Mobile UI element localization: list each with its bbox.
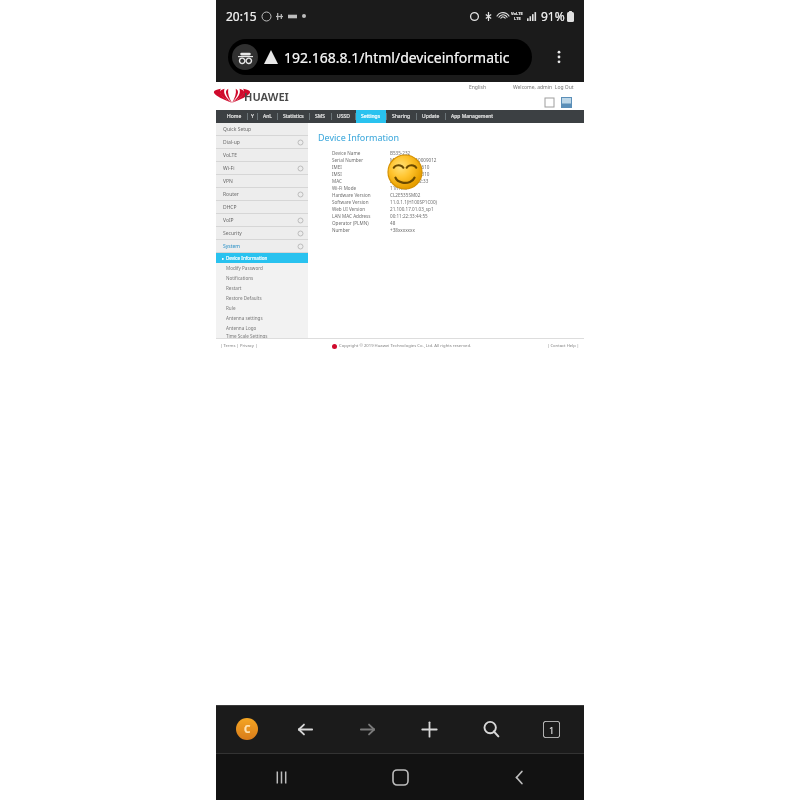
- button[interactable]: | Contact Help |: [547, 343, 580, 349]
- staticText: Antenna Logo: [226, 325, 257, 331]
- staticText: English: [469, 84, 487, 91]
- staticText: 1: [549, 724, 555, 736]
- button[interactable]: SMS: [545, 98, 554, 107]
- button[interactable]: Dial-up: [216, 136, 308, 148]
- staticText: +38xxxxxxx: [390, 227, 415, 233]
- staticText: 48: [390, 220, 396, 226]
- button[interactable]: VoLTE: [216, 149, 308, 161]
- button[interactable]: Tabs: [538, 716, 564, 742]
- staticText: IMEI: [332, 164, 342, 170]
- staticText: CL2E535SM02: [390, 192, 421, 198]
- button[interactable]: Antenna settings: [216, 313, 308, 323]
- button[interactable]: Notifications: [216, 273, 308, 283]
- staticText: LAN MAC Address: [332, 213, 371, 219]
- staticText: 91%: [541, 8, 565, 24]
- staticText: Software Version: [332, 199, 369, 205]
- button[interactable]: Home: [222, 110, 247, 123]
- staticText: 862152042155610: [390, 164, 430, 170]
- staticText: Dial-up: [223, 139, 240, 146]
- button[interactable]: Rule: [216, 303, 308, 313]
- staticText: | Contact Help |: [547, 343, 580, 349]
- button[interactable]: Restore Defaults: [216, 293, 308, 303]
- staticText: USSD: [337, 113, 350, 120]
- staticText: SMS: [315, 113, 326, 120]
- staticText: VoLTE: [223, 152, 238, 159]
- staticText: VoIP: [223, 217, 234, 224]
- button[interactable]: Statistics: [278, 110, 309, 123]
- button[interactable]: Quick Setup: [216, 123, 308, 135]
- button[interactable]: Wi-Fi: [216, 162, 308, 174]
- staticText: 11n mix: [390, 185, 408, 191]
- staticText: C: [244, 722, 251, 736]
- button[interactable]: Search: [476, 714, 506, 744]
- staticText: Rule: [226, 305, 236, 311]
- button[interactable]: Time Scale Settings: [216, 333, 308, 338]
- staticText: DHCP: [223, 204, 237, 211]
- button[interactable]: | Terms | Privacy |: [220, 343, 258, 349]
- staticText: Router: [223, 191, 239, 198]
- button[interactable]: English: [469, 84, 487, 91]
- other: Private browsing: [232, 44, 258, 70]
- staticText: MAC: [332, 178, 342, 184]
- button[interactable]: Brave Rewards: [236, 718, 258, 740]
- button[interactable]: Modify Password: [216, 263, 308, 273]
- staticText: System: [223, 243, 240, 250]
- button[interactable]: Recents: [264, 760, 298, 794]
- staticText: Update: [422, 113, 440, 120]
- button[interactable]: Router: [216, 188, 308, 200]
- button[interactable]: Sharing: [387, 110, 416, 123]
- staticText: Statistics: [283, 113, 304, 120]
- staticText: 206014182240310: [390, 171, 430, 177]
- staticText: 11.0.1.1(H100SP1C00): [390, 199, 437, 205]
- staticText: Antenna settings: [226, 315, 263, 321]
- button[interactable]: Status: [561, 97, 572, 108]
- staticText: Security: [223, 230, 242, 237]
- staticText: Quick Setup: [223, 126, 252, 133]
- staticText: Home: [227, 113, 242, 120]
- staticText: Time Scale Settings: [226, 333, 268, 338]
- staticText: Notifications: [226, 275, 254, 281]
- button[interactable]: Private browsing: [228, 39, 532, 75]
- button[interactable]: ▸: [216, 253, 308, 263]
- staticText: 20:15: [226, 8, 257, 24]
- staticText: Serial Number: [332, 157, 364, 163]
- button[interactable]: Y: [248, 110, 257, 123]
- button[interactable]: Settings: [356, 110, 386, 123]
- button[interactable]: DHCP: [216, 201, 308, 213]
- staticText: VoLTE: [511, 11, 523, 16]
- button[interactable]: Antenna Logo: [216, 323, 308, 333]
- button[interactable]: VPN: [216, 175, 308, 187]
- button[interactable]: App Management: [446, 110, 499, 123]
- button[interactable]: New tab: [414, 714, 444, 744]
- button[interactable]: Back: [290, 714, 320, 744]
- staticText: M2QWT20B10009012: [390, 157, 437, 163]
- button[interactable]: VoIP: [216, 214, 308, 226]
- button[interactable]: Welcome, admin Log Out: [513, 84, 574, 91]
- button[interactable]: AnL: [258, 110, 277, 123]
- staticText: AnL: [263, 113, 272, 120]
- staticText: Copyright © 2019 Huawei Technologies Co.…: [339, 343, 472, 349]
- button[interactable]: Forward: [352, 714, 382, 744]
- staticText: Number: [332, 227, 350, 233]
- button[interactable]: Update: [417, 110, 445, 123]
- staticText: HUAWEI: [244, 89, 289, 104]
- staticText: VPN: [223, 178, 233, 185]
- button[interactable]: Security: [216, 227, 308, 239]
- staticText: Restore Defaults: [226, 295, 262, 301]
- button[interactable]: Back: [502, 760, 536, 794]
- button[interactable]: Restart: [216, 283, 308, 293]
- staticText: Device Name: [332, 150, 361, 156]
- staticText: Sharing: [392, 113, 411, 120]
- staticText: | Terms | Privacy |: [220, 343, 258, 349]
- staticText: Wi-Fi: [223, 165, 235, 172]
- button[interactable]: USSD: [332, 110, 355, 123]
- staticText: Modify Password: [226, 265, 263, 271]
- button[interactable]: More options: [544, 42, 574, 72]
- staticText: 192.168.8.1/html/deviceinformatic: [284, 48, 510, 67]
- button[interactable]: SMS: [310, 110, 331, 123]
- staticText: 20:08:ED:11:22:33: [390, 178, 429, 184]
- staticText: Welcome, admin Log Out: [513, 84, 574, 91]
- staticText: Y: [251, 113, 254, 120]
- button[interactable]: System: [216, 240, 308, 252]
- button[interactable]: Home: [383, 760, 417, 794]
